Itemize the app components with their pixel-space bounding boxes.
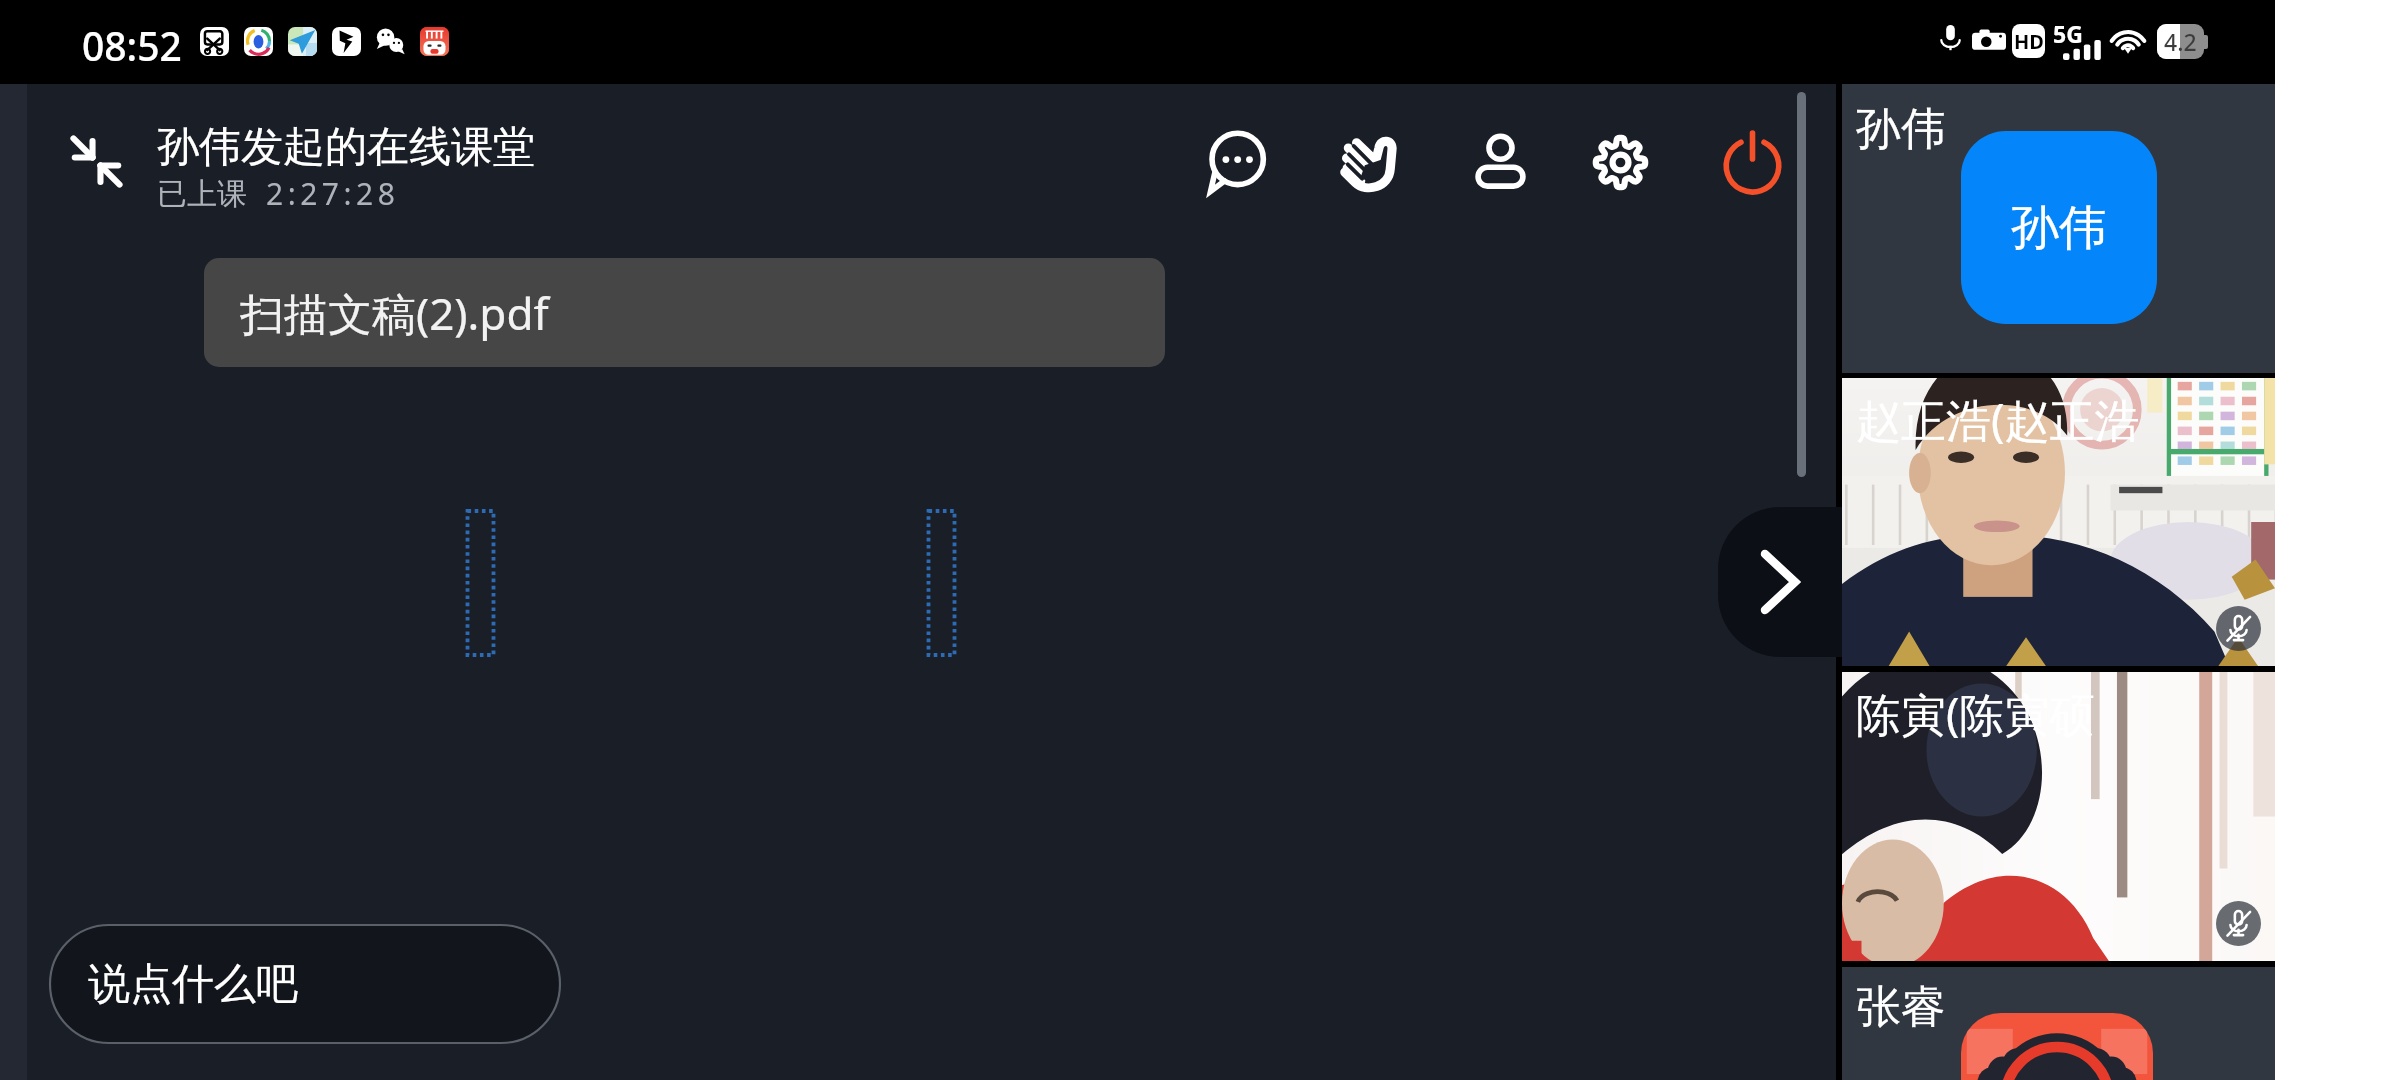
button[interactable]: Muted <box>2216 606 2261 651</box>
staticText: 08:52 <box>82 19 182 72</box>
staticText: 陈寅(陈寅硕 <box>1856 683 2095 744</box>
staticText: 已上课 <box>157 175 247 213</box>
button[interactable]: End class <box>1708 118 1796 206</box>
button[interactable]: Participant 陈寅 <box>1842 672 2275 961</box>
button[interactable]: Raise hand <box>1323 118 1411 206</box>
button[interactable]: 扫描文稿(2).pdf <box>204 258 1165 367</box>
button[interactable]: Settings <box>1576 118 1664 206</box>
staticText: 孙伟 <box>1856 101 1946 158</box>
button[interactable]: Participant 赵正浩 <box>1842 378 2275 666</box>
button[interactable]: 说点什么吧 <box>49 924 561 1044</box>
button[interactable]: Participants <box>1456 118 1544 206</box>
staticText: 孙伟 <box>2011 198 2107 258</box>
staticText: 4.2 <box>2164 26 2197 57</box>
staticText: 张睿 <box>1856 979 1946 1036</box>
staticText: HD <box>2014 28 2044 55</box>
button[interactable]: Chat <box>1192 118 1280 206</box>
button[interactable]: Minimize <box>60 125 133 198</box>
button[interactable]: Collapse participant list <box>1718 507 1842 657</box>
staticText: 扫描文稿(2).pdf <box>240 283 549 343</box>
staticText: 2:27:28 <box>266 173 400 214</box>
staticText: 5G <box>2053 18 2083 49</box>
staticText: 说点什么吧 <box>88 958 298 1011</box>
staticText: 赵正浩(赵正浩 <box>1856 389 2140 450</box>
button[interactable]: Muted <box>2216 901 2261 946</box>
button[interactable]: Participant 张睿 <box>1842 967 2275 1080</box>
button[interactable]: Participant 孙伟 <box>1842 84 2275 373</box>
staticText: 孙伟发起的在线课堂 <box>157 121 535 174</box>
